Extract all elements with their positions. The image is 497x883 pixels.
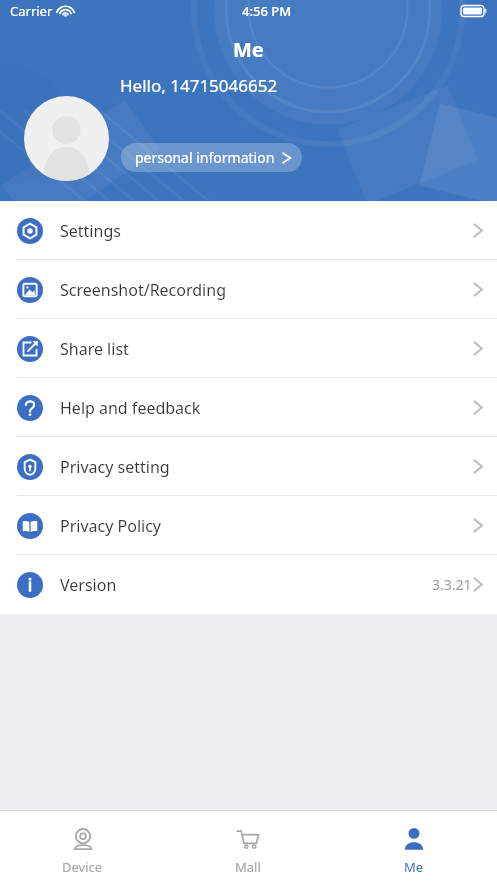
staticText: Share list	[60, 338, 129, 360]
staticText: Privacy Policy	[60, 515, 161, 537]
staticText: Carrier	[10, 2, 53, 20]
button[interactable]: Version	[0, 555, 497, 614]
button[interactable]: Me	[331, 811, 497, 883]
staticText: Help and feedback	[60, 397, 201, 419]
staticText: Me	[404, 858, 424, 876]
button[interactable]: personal information	[121, 143, 302, 172]
button[interactable]: Screenshot/Recording	[0, 260, 497, 319]
button[interactable]: Privacy Policy	[0, 496, 497, 555]
staticText: Me	[233, 36, 264, 63]
button[interactable]: Help and feedback	[0, 378, 497, 437]
button[interactable]: Mall	[165, 811, 331, 883]
staticText: Device	[62, 858, 103, 876]
staticText: Hello, 14715046652	[120, 74, 278, 97]
staticText: Settings	[60, 220, 121, 242]
staticText: Privacy setting	[60, 456, 170, 478]
staticText: Version	[60, 574, 117, 596]
button[interactable]: Privacy setting	[0, 437, 497, 496]
button[interactable]: Share list	[0, 319, 497, 378]
staticText: 4:56 PM	[242, 2, 292, 20]
button[interactable]: Settings	[0, 201, 497, 260]
staticText: Mall	[235, 858, 261, 876]
staticText: Screenshot/Recording	[60, 279, 226, 301]
staticText: personal information	[135, 148, 275, 167]
button[interactable]: Device	[0, 811, 165, 883]
staticText: 3.3.21	[432, 575, 472, 594]
